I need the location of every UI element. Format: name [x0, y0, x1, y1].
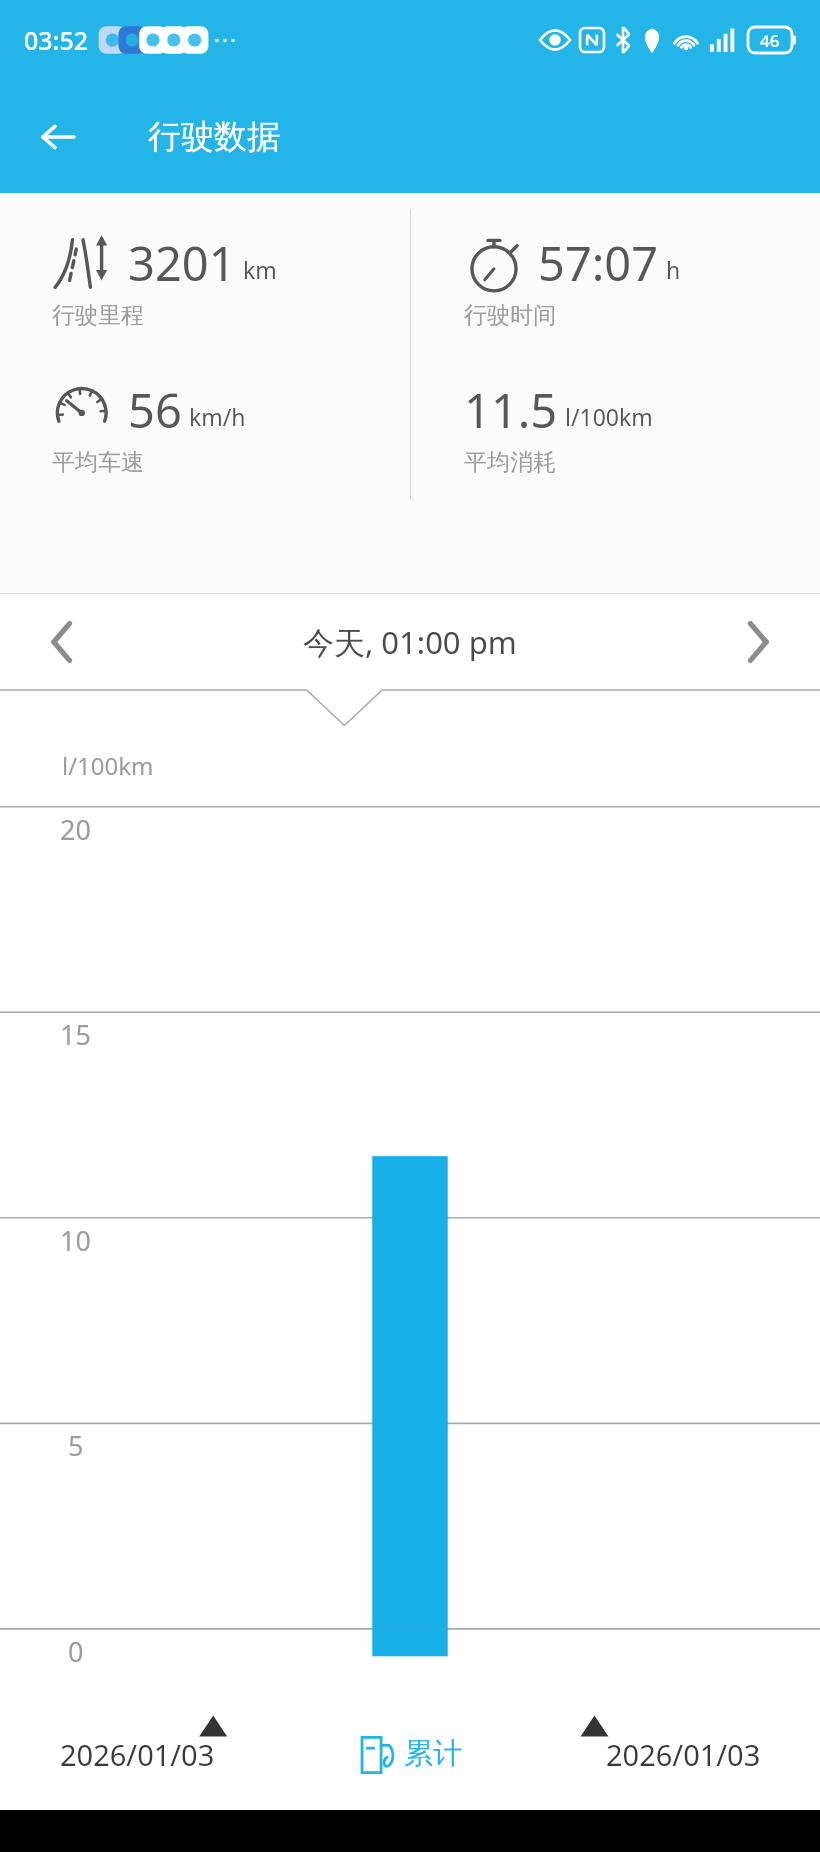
- staticText: 0: [68, 1633, 84, 1670]
- staticText: 15: [60, 1016, 91, 1053]
- button[interactable]: 今天, 01:00 pm: [98, 594, 722, 690]
- staticText: 20: [60, 811, 91, 848]
- staticText: 行驶时间: [464, 301, 556, 330]
- staticText: 57:07: [538, 231, 659, 295]
- staticText: 行驶里程: [52, 301, 144, 330]
- staticText: km/h: [189, 401, 246, 432]
- staticText: 46: [760, 29, 780, 52]
- button[interactable]: 2026/01/03: [547, 1735, 820, 1774]
- staticText: 平均车速: [52, 448, 144, 477]
- staticText: 5: [68, 1427, 84, 1464]
- button[interactable]: Next day: [722, 606, 794, 678]
- button[interactable]: Previous day: [26, 606, 98, 678]
- button[interactable]: Back: [30, 109, 86, 165]
- button[interactable]: 2026/01/03: [0, 1735, 274, 1774]
- staticText: 11.5: [464, 378, 558, 442]
- staticText: 56: [128, 378, 182, 442]
- staticText: l/100km: [62, 749, 154, 782]
- staticText: km: [243, 254, 277, 285]
- staticText: 累计: [404, 1735, 462, 1772]
- staticText: ⋯: [213, 26, 237, 54]
- staticText: h: [666, 254, 681, 285]
- staticText: 平均消耗: [464, 448, 556, 477]
- staticText: 3201: [128, 231, 236, 295]
- staticText: l/100km: [565, 401, 653, 432]
- staticText: 今天, 01:00 pm: [303, 621, 517, 663]
- staticText: 2026/01/03: [60, 1735, 215, 1774]
- staticText: 10: [60, 1222, 91, 1259]
- staticText: 03:52: [24, 23, 89, 57]
- button[interactable]: 累计: [274, 1735, 547, 1775]
- staticText: 行驶数据: [148, 116, 280, 158]
- staticText: 2026/01/03: [606, 1735, 761, 1774]
